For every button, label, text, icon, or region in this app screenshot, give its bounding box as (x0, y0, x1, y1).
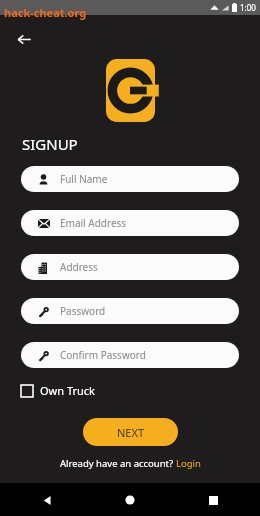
staticText: Login (176, 457, 201, 470)
button[interactable]: Full Name (21, 166, 239, 192)
staticText: Already have an account? (60, 457, 176, 470)
button[interactable]: Back (10, 25, 38, 53)
staticText: Email Address (60, 216, 127, 230)
button[interactable]: Confirm Password (21, 342, 239, 368)
staticText: Own Truck (40, 383, 95, 398)
button[interactable]: Address (21, 254, 239, 280)
staticText: Confirm Password (60, 348, 146, 362)
button[interactable]: Password (21, 298, 239, 324)
button[interactable]: Home (117, 487, 143, 513)
button[interactable]: Own Truck (21, 383, 95, 398)
button[interactable]: Login (176, 457, 201, 470)
staticText: 1:00 (240, 2, 256, 13)
button[interactable]: Email Address (21, 210, 239, 236)
staticText: Full Name (60, 172, 108, 186)
staticText: SIGNUP (22, 134, 78, 154)
button[interactable]: Back (34, 487, 60, 513)
button[interactable]: Recent apps (200, 487, 226, 513)
staticText: Password (60, 304, 106, 318)
button[interactable]: NEXT (83, 418, 178, 446)
staticText: NEXT (117, 425, 145, 440)
staticText: Address (60, 260, 98, 274)
staticText: hack-cheat.org (4, 5, 87, 20)
